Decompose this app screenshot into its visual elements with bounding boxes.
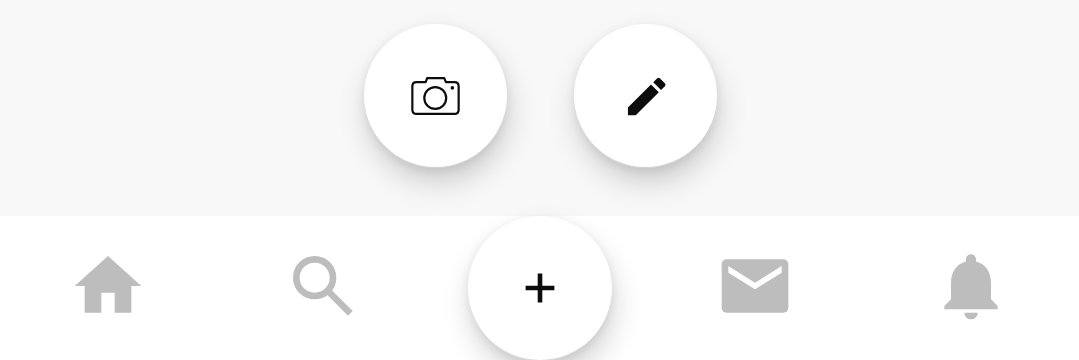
button[interactable]: Notifications — [863, 216, 1079, 360]
button[interactable]: Add — [468, 216, 612, 360]
button[interactable]: Compose — [574, 24, 717, 167]
button[interactable]: Messages — [647, 216, 863, 360]
button[interactable]: Home — [0, 216, 215, 360]
button[interactable]: Search — [215, 216, 431, 360]
button[interactable]: Take photo — [364, 24, 507, 167]
